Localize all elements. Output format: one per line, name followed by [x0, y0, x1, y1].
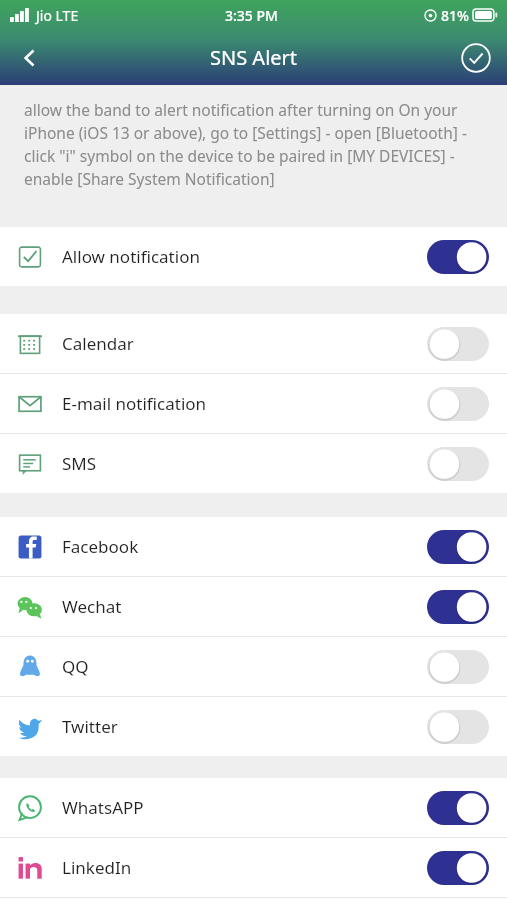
button[interactable]: LinkedIn — [0, 838, 507, 897]
button[interactable]: On — [427, 240, 489, 274]
button[interactable]: Facebook — [0, 517, 507, 576]
button[interactable]: Wechat — [0, 577, 507, 636]
staticText: Calendar — [62, 332, 134, 355]
button[interactable]: Confirm — [453, 35, 499, 81]
staticText: Facebook — [62, 535, 139, 558]
staticText: E-mail notification — [62, 392, 207, 415]
button[interactable]: SMS — [0, 434, 507, 493]
button[interactable]: Off — [427, 447, 489, 481]
button[interactable]: On — [427, 530, 489, 564]
button[interactable]: Allow notification — [0, 227, 507, 286]
button[interactable]: Off — [427, 327, 489, 361]
button[interactable]: Off — [427, 710, 489, 744]
button[interactable]: Off — [427, 387, 489, 421]
staticText: WhatsAPP — [62, 796, 144, 819]
staticText: Allow notification — [62, 245, 200, 268]
button[interactable]: Off — [427, 650, 489, 684]
staticText: 3:35 PM — [225, 6, 278, 25]
button[interactable]: Twitter — [0, 697, 507, 756]
button[interactable]: QQ — [0, 637, 507, 696]
button[interactable]: On — [427, 791, 489, 825]
button[interactable]: WhatsAPP — [0, 778, 507, 837]
staticText: SMS — [62, 452, 97, 475]
button[interactable]: Back — [6, 34, 54, 82]
staticText: Twitter — [62, 715, 118, 738]
staticText: Wechat — [62, 595, 122, 618]
staticText: SNS Alert — [210, 44, 298, 71]
button[interactable]: E-mail notification — [0, 374, 507, 433]
staticText: 81% — [441, 6, 469, 25]
button[interactable]: On — [427, 590, 489, 624]
button[interactable]: Calendar — [0, 314, 507, 373]
button[interactable]: On — [427, 851, 489, 885]
staticText: allow the band to alert notification aft… — [24, 99, 489, 190]
staticText: QQ — [62, 655, 89, 678]
staticText: LinkedIn — [62, 856, 132, 879]
staticText: Jio LTE — [36, 6, 79, 25]
